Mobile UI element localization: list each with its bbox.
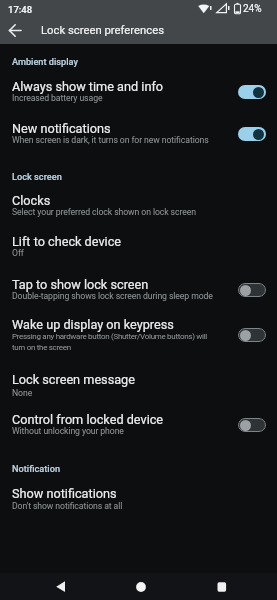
staticText: When screen is dark, it turns on for new… — [12, 135, 209, 145]
button[interactable]: Control from locked device — [0, 404, 277, 448]
button[interactable]: New notifications — [0, 112, 277, 158]
staticText: Increased battery usage — [12, 93, 103, 103]
button[interactable] — [47, 573, 75, 600]
staticText: 17:48 — [8, 4, 33, 15]
staticText: Tap to show lock screen — [12, 277, 149, 292]
staticText: Double-tapping shows lock screen during … — [12, 291, 213, 301]
staticText: Without unlocking your phone — [12, 426, 124, 436]
staticText: Show notifications — [12, 486, 117, 501]
staticText: Notification — [12, 463, 61, 474]
staticText: None — [12, 388, 33, 398]
staticText: Wake up display on keypress — [12, 317, 174, 332]
staticText: Off — [12, 248, 24, 258]
button[interactable]: Always show time and info — [0, 70, 277, 112]
staticText: Control from locked device — [12, 412, 164, 427]
button[interactable]: Wake up display on keypress — [0, 310, 277, 362]
button[interactable]: Lift to check device — [0, 226, 277, 268]
staticText: Always show time and info — [12, 79, 164, 94]
button[interactable]: Show notifications — [0, 478, 277, 520]
staticText: Pressing any hardware button (Shutter/Vo… — [12, 332, 207, 352]
button[interactable] — [208, 573, 236, 600]
button[interactable] — [127, 573, 155, 600]
staticText: Clocks — [12, 193, 51, 208]
staticText: Lift to check device — [12, 234, 122, 249]
button[interactable]: Clocks — [0, 186, 277, 226]
staticText: New notifications — [12, 121, 111, 136]
staticText: Don't show notifications at all — [12, 501, 123, 511]
button[interactable]: Lock screen message — [0, 362, 277, 404]
staticText: Lock screen message — [12, 372, 135, 387]
staticText: Select your preferred clock shown on loc… — [12, 207, 196, 217]
staticText: Lock screen — [12, 171, 62, 182]
staticText: Ambient display — [12, 56, 78, 67]
staticText: Lock screen preferences — [41, 24, 164, 37]
staticText: 24% — [243, 3, 262, 15]
button[interactable] — [2, 17, 29, 44]
button[interactable]: Tap to show lock screen — [0, 268, 277, 310]
